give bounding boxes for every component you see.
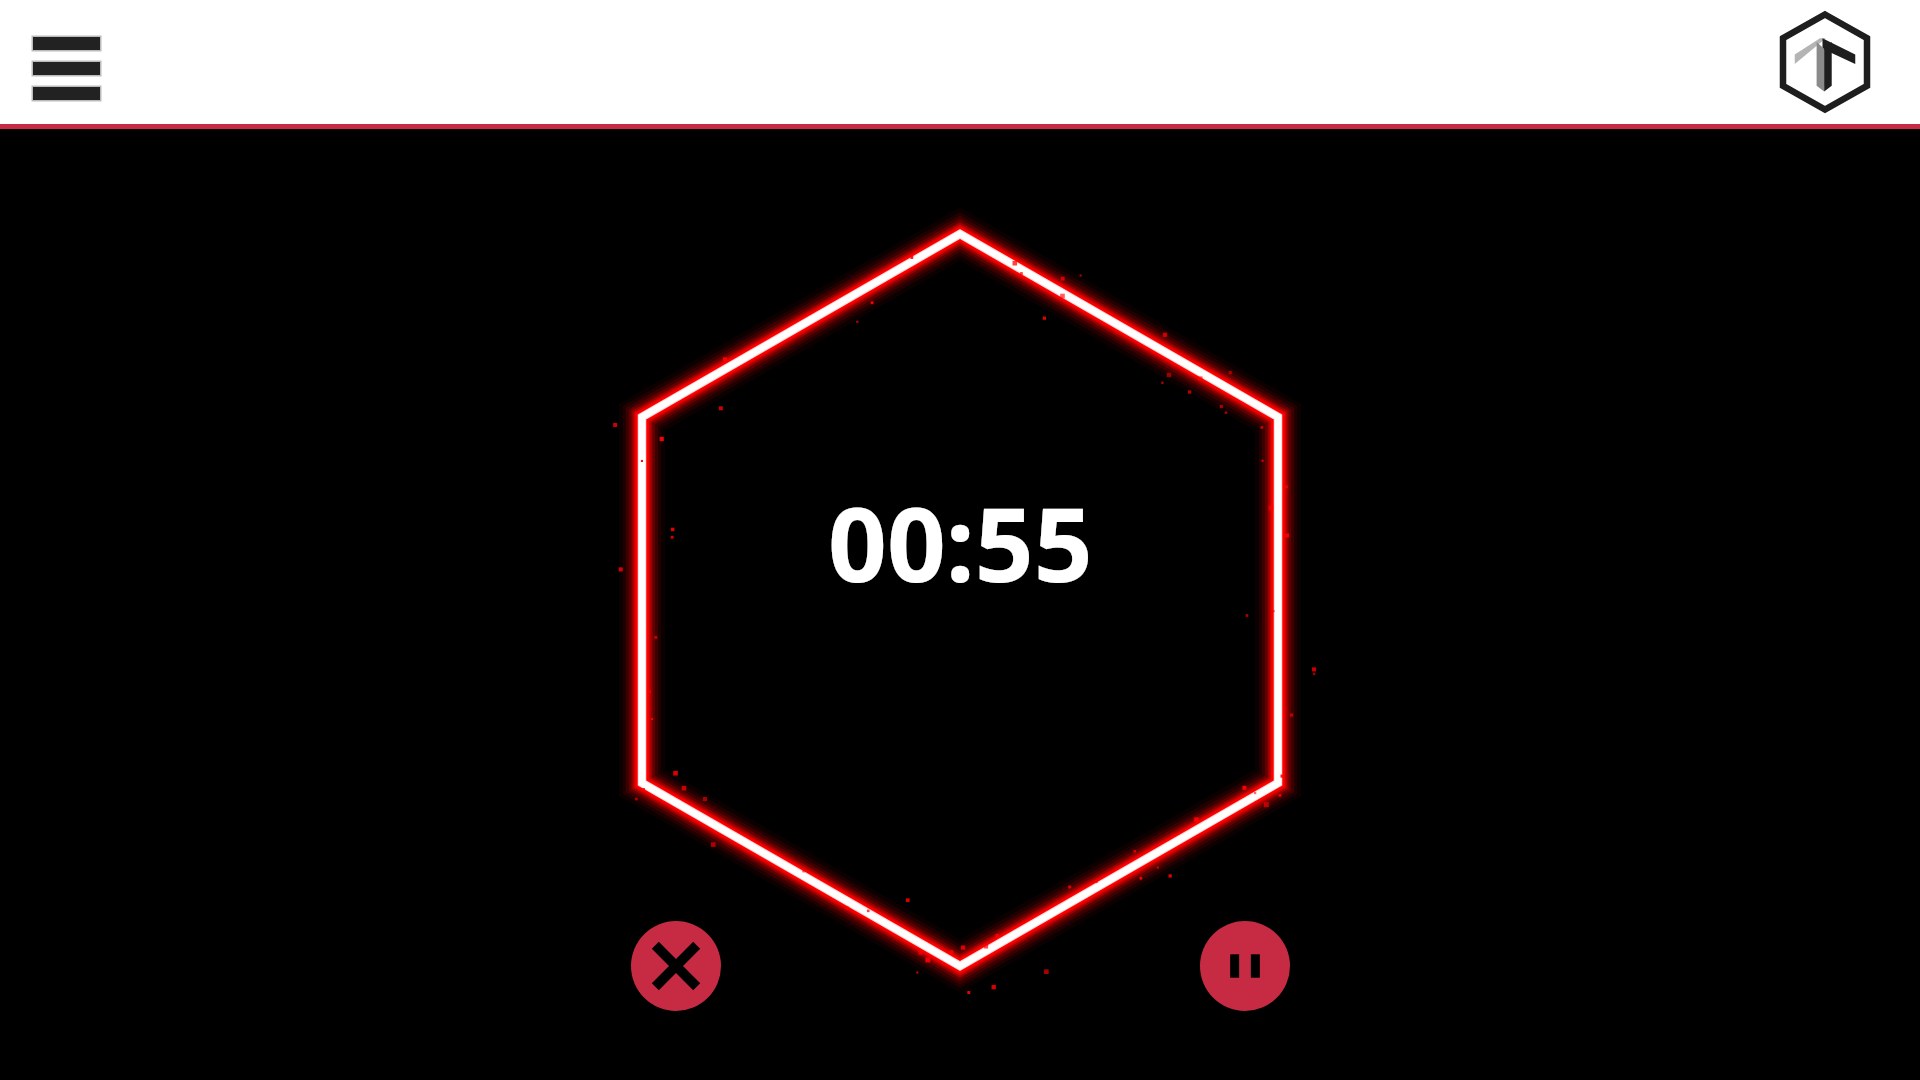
button[interactable]: Stop timer [631, 921, 721, 1011]
button[interactable]: Open navigation menu [18, 22, 115, 102]
staticText: 00:55 [828, 472, 1093, 612]
button[interactable]: App logo [1775, 12, 1875, 112]
button[interactable]: Pause timer [1200, 921, 1290, 1011]
